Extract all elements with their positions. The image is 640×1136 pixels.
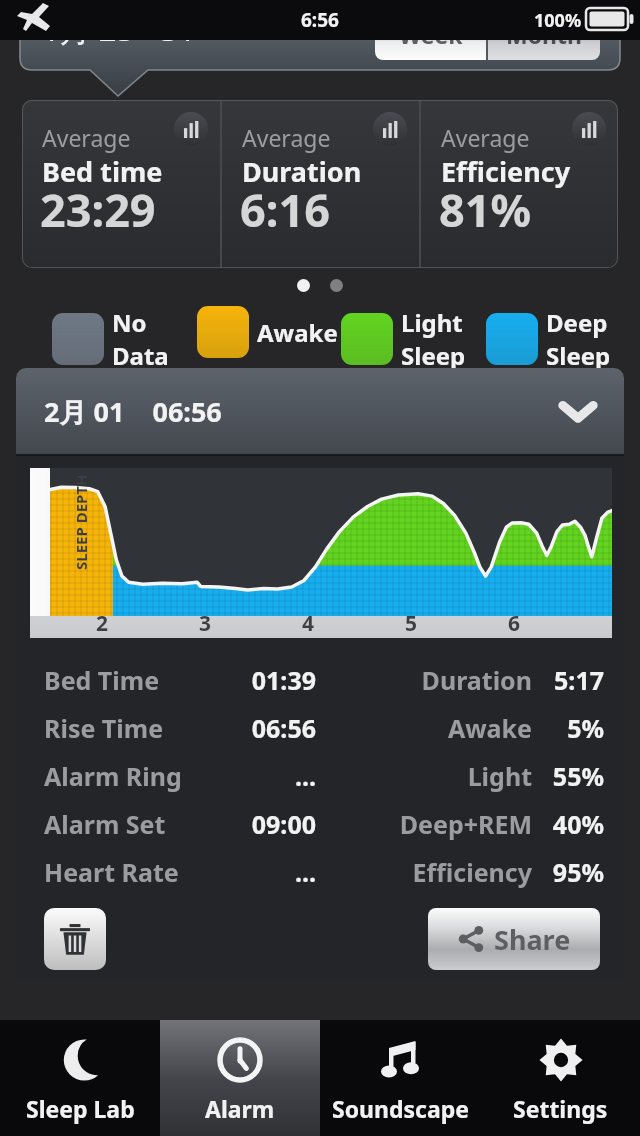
staticText: Settings (513, 1093, 608, 1124)
staticText: Heart Rate (44, 855, 216, 889)
staticText: Efficiency (441, 153, 571, 190)
staticText: 01:39 (216, 663, 316, 697)
staticText: 81% (439, 179, 532, 240)
staticText: 09:00 (216, 807, 316, 841)
staticText: 06:56 (216, 711, 316, 745)
button[interactable]: Settings (480, 1020, 640, 1136)
staticText: Average (42, 122, 131, 153)
button[interactable]: Deep Sleep (486, 306, 611, 372)
staticText: Awake (257, 316, 338, 349)
button[interactable]: Alarm (160, 1020, 320, 1136)
button[interactable]: Show chart (572, 112, 606, 146)
staticText: 6:56 (301, 7, 339, 33)
staticText: Sleep (401, 339, 466, 372)
staticText: Average (242, 122, 331, 153)
button[interactable]: Average (421, 100, 618, 268)
staticText: 5% (532, 711, 604, 745)
button[interactable]: Average (222, 100, 419, 268)
button[interactable]: Show chart (373, 112, 407, 146)
staticText: 2月 01 06:56 (44, 393, 222, 430)
button[interactable]: Awake (197, 306, 338, 358)
button[interactable]: Light Sleep (341, 306, 466, 372)
button[interactable]: Soundscape (320, 1020, 480, 1136)
button[interactable]: Collapse (558, 391, 598, 431)
staticText: Bed Time (44, 663, 216, 697)
button[interactable]: Month (488, 8, 600, 60)
staticText: Alarm (205, 1093, 275, 1124)
staticText: Data (112, 339, 169, 372)
button[interactable]: Delete (44, 908, 106, 970)
staticText: Efficiency (330, 855, 532, 889)
staticText: Deep (546, 306, 608, 339)
staticText: SLEEP DEPTH (71, 474, 91, 570)
staticText: 5 (405, 609, 418, 638)
staticText: Month (506, 19, 582, 50)
staticText: Sleep Lab (26, 1093, 135, 1124)
staticText: 1月 25 - 31 (42, 8, 196, 50)
staticText: Sleep (546, 339, 611, 372)
staticText: 2 (96, 609, 109, 638)
staticText: Average (441, 122, 530, 153)
button[interactable]: Show chart (174, 112, 208, 146)
staticText: 3 (199, 609, 212, 638)
staticText: Light (330, 759, 532, 793)
staticText: ... (216, 855, 316, 889)
button[interactable]: Average (22, 100, 220, 268)
staticText: Duration (242, 153, 362, 190)
button[interactable]: Sleep Lab (0, 1020, 160, 1136)
staticText: Rise Time (44, 711, 216, 745)
staticText: 55% (532, 759, 604, 793)
button[interactable]: Share (428, 908, 600, 970)
staticText: 5:17 (532, 663, 604, 697)
staticText: 100% (534, 8, 582, 33)
staticText: 95% (532, 855, 604, 889)
staticText: 6:16 (240, 179, 330, 240)
staticText: 4 (302, 609, 315, 638)
staticText: Awake (330, 711, 532, 745)
staticText: Alarm Set (44, 807, 216, 841)
staticText: Week (399, 19, 463, 50)
button[interactable]: No Data (52, 306, 169, 372)
staticText: No (112, 306, 147, 339)
staticText: 40% (532, 807, 604, 841)
button[interactable]: 2月 01 06:56 (16, 368, 624, 454)
staticText: Alarm Ring (44, 759, 216, 793)
staticText: Duration (330, 663, 532, 697)
staticText: Bed time (42, 153, 163, 190)
button[interactable]: Week (375, 8, 486, 60)
staticText: Light (401, 306, 463, 339)
staticText: Soundscape (332, 1093, 469, 1124)
staticText: 23:29 (40, 179, 156, 240)
staticText: ... (216, 759, 316, 793)
staticText: Share (494, 921, 571, 958)
staticText: 6 (508, 609, 521, 638)
staticText: Deep+REM (330, 807, 532, 841)
